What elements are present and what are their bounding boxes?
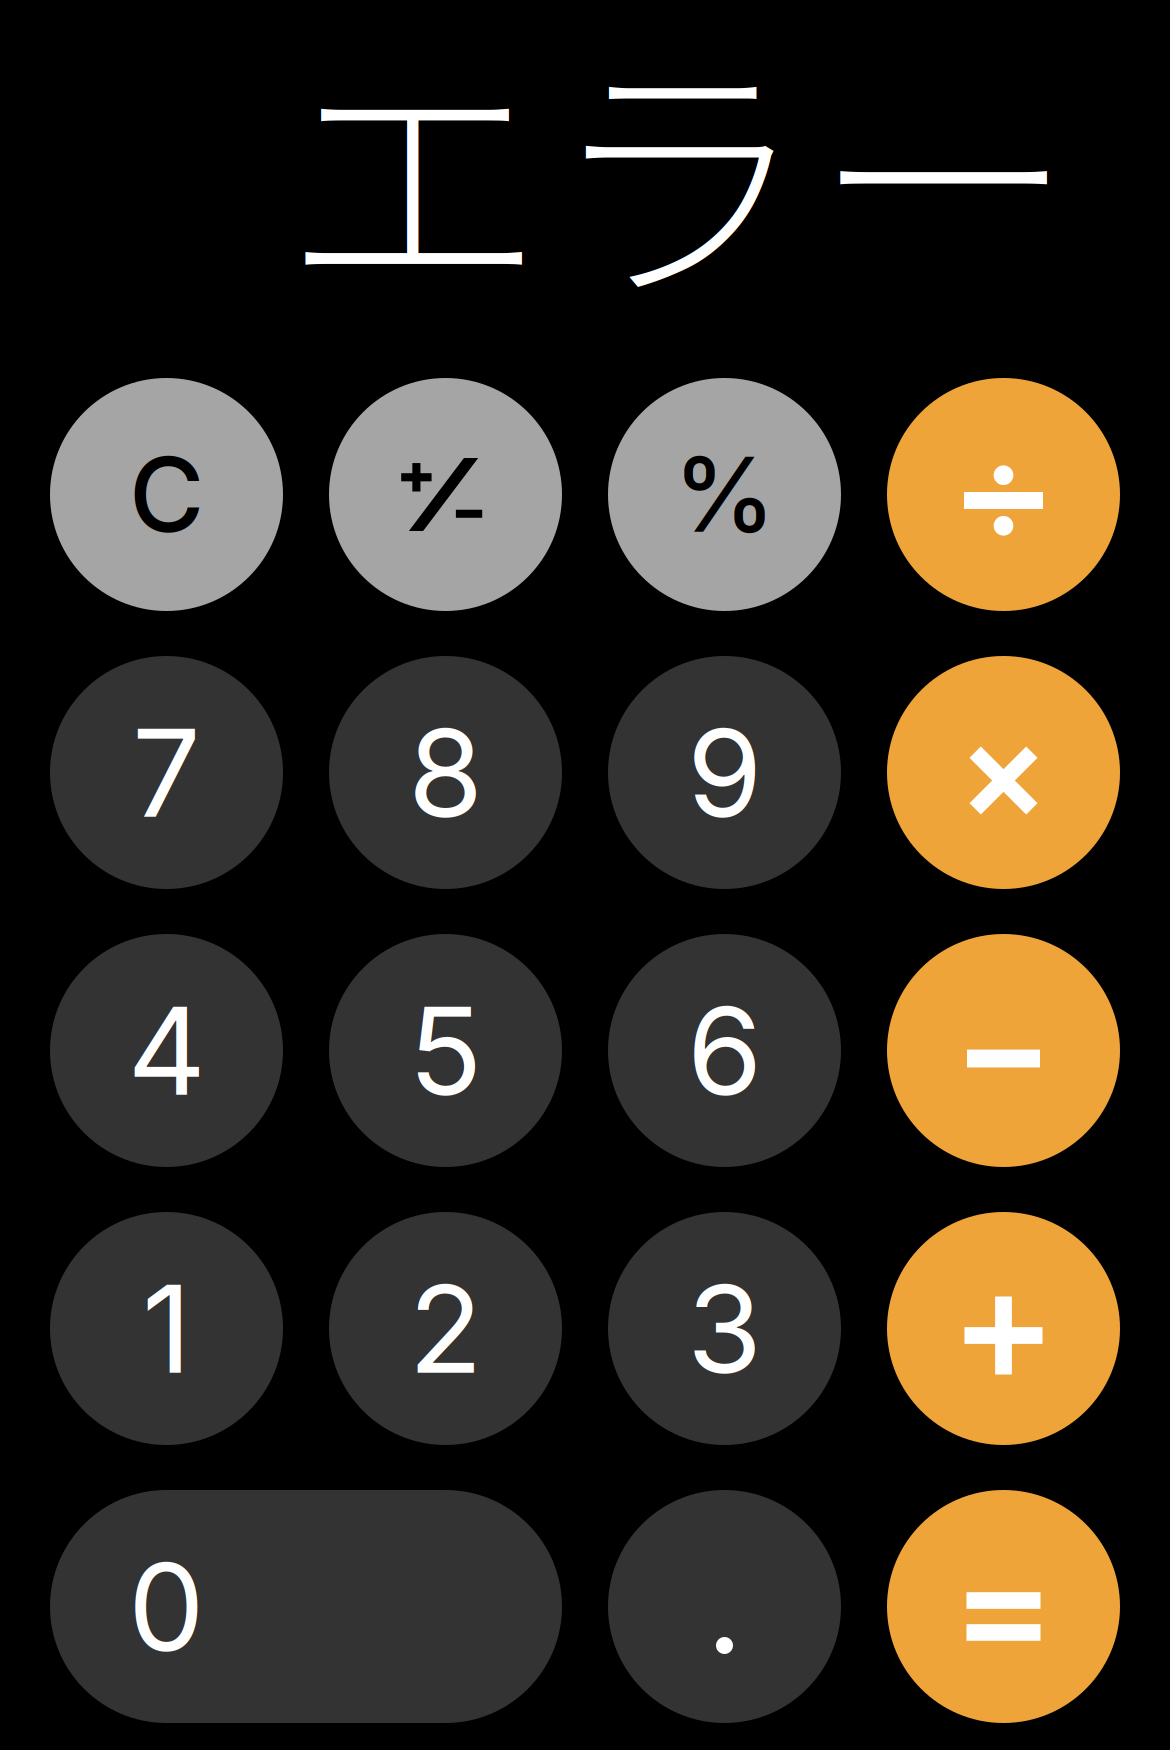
staticText: 0 <box>128 1533 205 1680</box>
button[interactable]: 0 <box>50 1490 562 1723</box>
button[interactable]: 7 <box>50 656 283 889</box>
button[interactable]: 8 <box>329 656 562 889</box>
button[interactable]: 2 <box>329 1212 562 1445</box>
staticText: 6 <box>687 977 762 1124</box>
button[interactable]: 4 <box>50 934 283 1167</box>
button[interactable]: Add <box>887 1212 1120 1445</box>
button[interactable]: C <box>50 378 283 611</box>
staticText: 9 <box>687 699 762 846</box>
staticText: 8 <box>408 699 483 846</box>
staticText: 1 <box>142 1255 191 1402</box>
staticText: 4 <box>127 977 205 1124</box>
button[interactable]: Equals <box>887 1490 1120 1723</box>
staticText: 5 <box>408 977 482 1124</box>
button[interactable]: Subtract <box>887 934 1120 1167</box>
button[interactable]: % <box>608 378 841 611</box>
button[interactable]: Divide <box>887 378 1120 611</box>
button[interactable]: Decimal point <box>608 1490 841 1723</box>
staticText: 2 <box>408 1255 482 1402</box>
button[interactable]: 1 <box>50 1212 283 1445</box>
staticText: 7 <box>132 699 201 846</box>
button[interactable]: Multiply <box>887 656 1120 889</box>
button[interactable]: 6 <box>608 934 841 1167</box>
staticText: 3 <box>687 1255 762 1402</box>
button[interactable]: 9 <box>608 656 841 889</box>
staticText: エラー <box>281 0 1076 356</box>
button[interactable]: 3 <box>608 1212 841 1445</box>
staticText: % <box>673 432 775 557</box>
button[interactable]: Plus minus <box>329 378 562 611</box>
staticText: C <box>129 432 204 557</box>
button[interactable]: 5 <box>329 934 562 1167</box>
